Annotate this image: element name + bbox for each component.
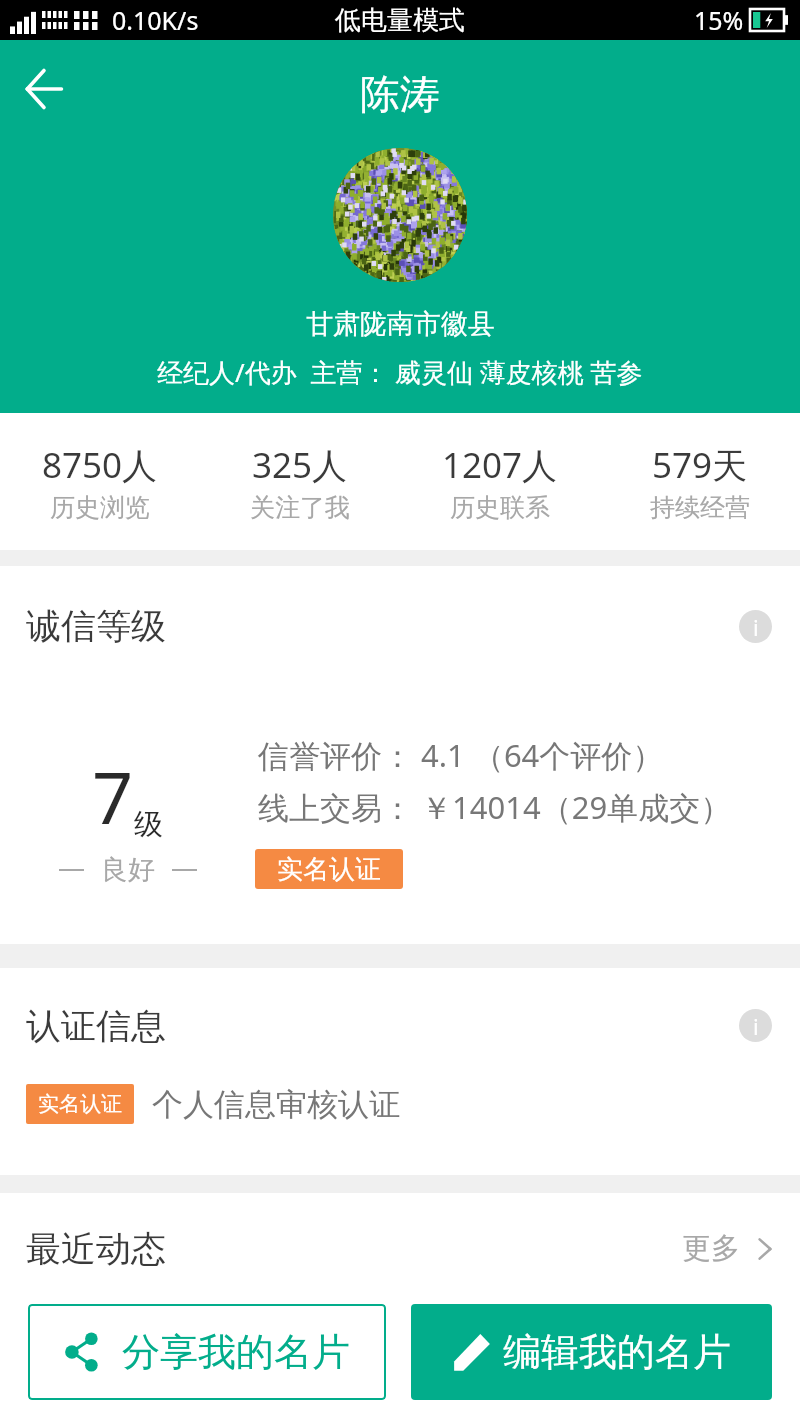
staticText: 实名认证 <box>277 853 381 886</box>
button[interactable]: 编辑我的名片 <box>411 1304 772 1400</box>
staticText: 关注了我 <box>250 492 350 523</box>
staticText: 陈涛 <box>360 69 440 119</box>
staticText: 0.10K/s <box>112 3 199 37</box>
button[interactable]: 8750人 <box>0 413 200 550</box>
button[interactable]: 实名认证 <box>255 849 403 889</box>
button[interactable]: Info <box>739 1009 772 1042</box>
staticText: 低电量模式 <box>335 4 465 37</box>
staticText: 历史浏览 <box>50 492 150 523</box>
staticText: i <box>753 1011 759 1041</box>
staticText: 甘肃陇南市徽县 <box>306 307 495 341</box>
button[interactable]: 579天 <box>600 413 800 550</box>
staticText: 线上交易： ￥14014（29单成交） <box>258 786 732 828</box>
button[interactable]: Avatar <box>333 148 467 282</box>
staticText: 历史联系 <box>450 492 550 523</box>
staticText: 诚信等级 <box>26 604 166 648</box>
button[interactable]: 最近动态 <box>26 1207 774 1290</box>
staticText: 1207人 <box>442 441 558 489</box>
staticText: i <box>753 612 759 642</box>
staticText: 级 <box>134 806 163 843</box>
button[interactable]: Info <box>739 610 772 643</box>
staticText: 信誉评价： 4.1 （64个评价） <box>258 734 664 776</box>
staticText: 经纪人/代办 主营： 威灵仙 薄皮核桃 苦参 <box>157 354 643 390</box>
staticText: 良好 <box>101 853 155 887</box>
staticText: 持续经营 <box>650 492 750 523</box>
button[interactable]: 分享我的名片 <box>28 1304 386 1400</box>
staticText: 实名认证 <box>38 1091 122 1117</box>
button[interactable]: Back <box>8 53 80 125</box>
staticText: 更多 <box>682 1230 740 1267</box>
staticText: 认证信息 <box>26 1004 166 1046</box>
staticText: 8750人 <box>42 441 158 489</box>
staticText: 579天 <box>652 441 748 489</box>
staticText: 最近动态 <box>26 1227 166 1271</box>
staticText: 编辑我的名片 <box>503 1328 731 1376</box>
staticText: 分享我的名片 <box>122 1328 350 1376</box>
button[interactable]: 1207人 <box>400 413 600 550</box>
staticText: 15% <box>694 3 744 37</box>
staticText: 个人信息审核认证 <box>152 1085 400 1124</box>
button[interactable]: 325人 <box>200 413 400 550</box>
staticText: 325人 <box>252 441 348 489</box>
staticText: 7 <box>92 747 134 845</box>
